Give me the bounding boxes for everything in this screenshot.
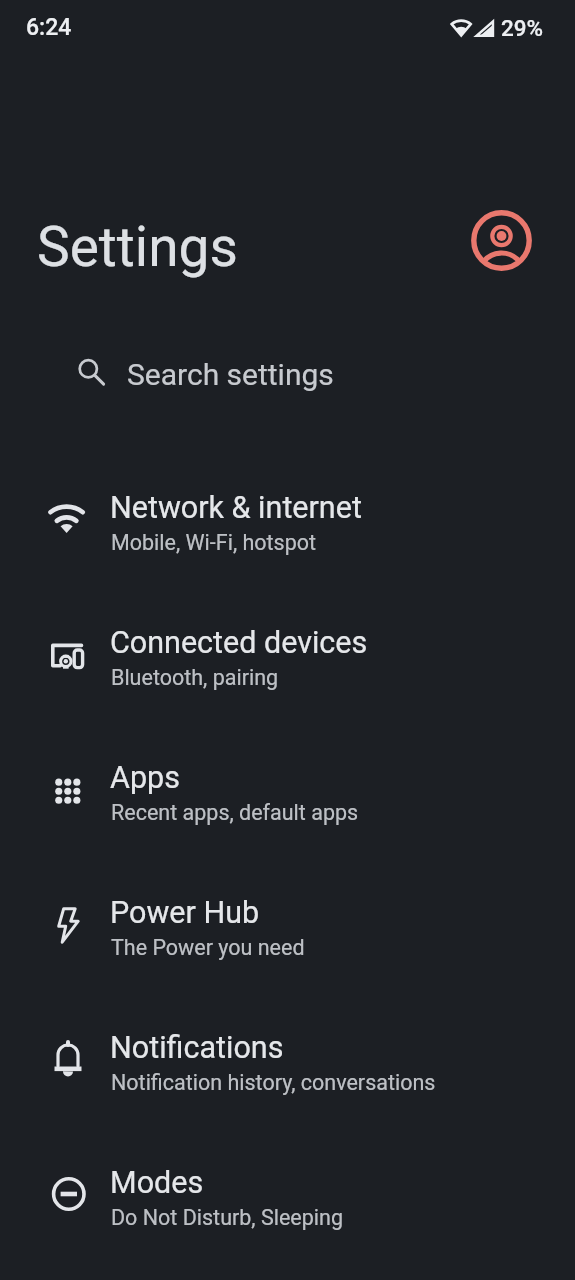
button[interactable] bbox=[0, 860, 575, 995]
staticText: 29% bbox=[501, 15, 544, 41]
staticText: Bluetooth, pairing bbox=[111, 665, 279, 690]
staticText: Mobile, Wi-Fi, hotspot bbox=[111, 530, 317, 555]
staticText: Recent apps, default apps bbox=[111, 800, 359, 825]
staticText: Connected devices bbox=[110, 625, 368, 661]
staticText: Do Not Disturb, Sleeping bbox=[111, 1205, 343, 1230]
staticText: Search settings bbox=[127, 357, 334, 392]
button[interactable] bbox=[0, 590, 575, 725]
button[interactable] bbox=[0, 455, 575, 590]
staticText: Settings bbox=[37, 215, 238, 279]
staticText: Apps bbox=[110, 760, 180, 796]
staticText: Notifications bbox=[110, 1030, 284, 1066]
button[interactable] bbox=[0, 725, 575, 860]
button[interactable] bbox=[0, 995, 575, 1130]
staticText: Network & internet bbox=[110, 490, 362, 526]
button[interactable] bbox=[0, 1130, 575, 1265]
button[interactable] bbox=[62, 342, 513, 404]
staticText: 6:24 bbox=[26, 14, 72, 41]
staticText: Notification history, conversations bbox=[111, 1070, 436, 1095]
staticText: Modes bbox=[110, 1165, 204, 1201]
staticText: Power Hub bbox=[110, 895, 260, 931]
button[interactable] bbox=[470, 209, 533, 272]
staticText: The Power you need bbox=[111, 935, 305, 960]
